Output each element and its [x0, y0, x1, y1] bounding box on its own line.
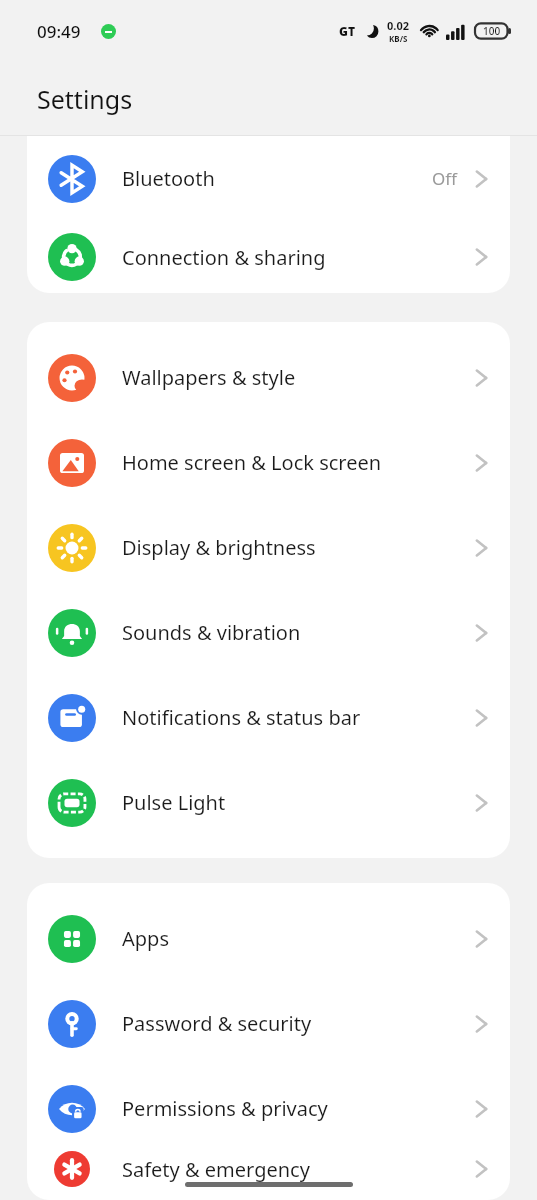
staticText: Pulse Light	[122, 789, 475, 816]
staticText: Settings	[37, 82, 133, 116]
other: Bluetooth	[48, 155, 96, 203]
staticText: 0.02	[387, 18, 409, 33]
button[interactable]: Password and security	[27, 981, 510, 1066]
staticText: Bluetooth	[122, 165, 432, 192]
button[interactable]: Wallpapers and style	[27, 335, 510, 420]
staticText: Notifications & status bar	[122, 704, 475, 731]
staticText: 100	[483, 24, 501, 38]
staticText: Wallpapers & style	[122, 364, 475, 391]
other: Display and brightness	[48, 524, 96, 572]
staticText: Safety & emergency	[122, 1156, 475, 1183]
staticText: Connection & sharing	[122, 244, 475, 271]
button[interactable]: Display and brightness	[27, 505, 510, 590]
button[interactable]: Connection and sharing	[27, 221, 510, 293]
staticText: Apps	[122, 925, 475, 952]
staticText: GT	[339, 23, 355, 39]
button[interactable]: Sounds and vibration	[27, 590, 510, 675]
other: Wallpapers and style	[48, 354, 96, 402]
other: Apps	[48, 915, 96, 963]
staticText: Password & security	[122, 1010, 475, 1037]
button[interactable]: Permissions and privacy	[27, 1066, 510, 1151]
other: Sounds and vibration	[48, 609, 96, 657]
other: Safety and emergency	[48, 1151, 96, 1187]
other: Connection and sharing	[48, 233, 96, 281]
staticText: Sounds & vibration	[122, 619, 475, 646]
button[interactable]: Bluetooth	[27, 136, 510, 221]
other: Pulse Light	[48, 779, 96, 827]
button[interactable]: Pulse Light	[27, 760, 510, 845]
button[interactable]: Home screen and Lock screen	[27, 420, 510, 505]
other: Password and security	[48, 1000, 96, 1048]
staticText: Home screen & Lock screen	[122, 449, 475, 476]
button[interactable]: Notifications and status bar	[27, 675, 510, 760]
other: Notifications and status bar	[48, 694, 96, 742]
other: Home screen and Lock screen	[48, 439, 96, 487]
button[interactable]: Apps	[27, 896, 510, 981]
staticText: KB/S	[389, 33, 408, 44]
staticText: Permissions & privacy	[122, 1095, 475, 1122]
staticText: Display & brightness	[122, 534, 475, 561]
other: Permissions and privacy	[48, 1085, 96, 1133]
button[interactable]: Safety and emergency	[27, 1151, 510, 1187]
staticText: 09:49	[37, 20, 81, 43]
staticText: Off	[432, 167, 457, 190]
